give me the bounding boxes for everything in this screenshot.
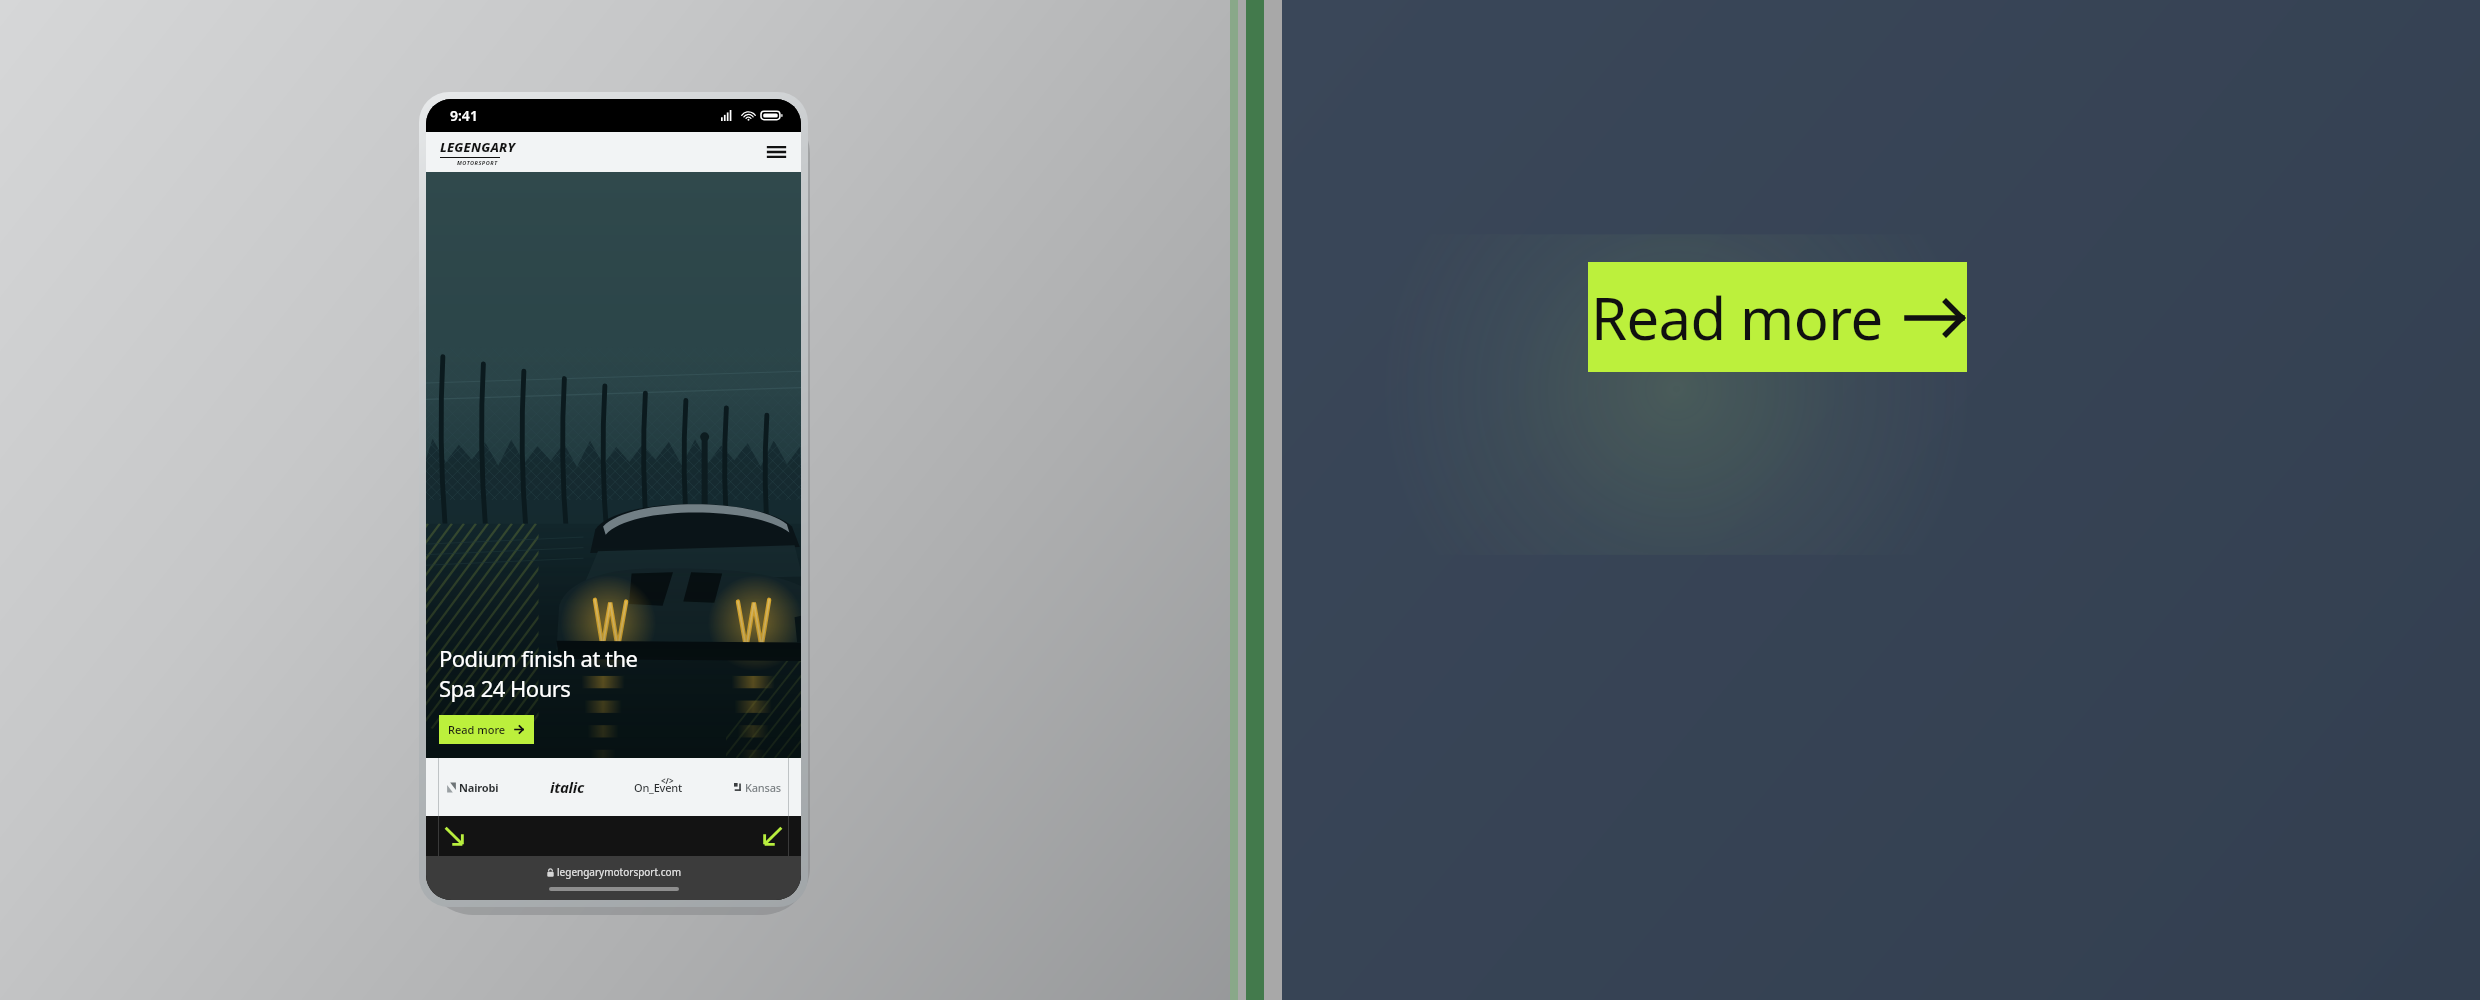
staticText: Nairobi <box>459 780 499 795</box>
staticText: On_Event <box>634 780 683 795</box>
staticText: Podium finish at the <box>439 643 638 673</box>
staticText: Spa 24 Hours <box>439 673 571 703</box>
staticText: Read more <box>1591 278 1883 357</box>
staticText: italic <box>550 777 584 797</box>
staticText: Read more <box>448 722 506 737</box>
button[interactable]: Open menu <box>765 141 787 163</box>
button[interactable]: Read more <box>1588 262 1967 372</box>
staticText: MOTORSPORT <box>457 159 498 166</box>
staticText: LEGENGARY <box>440 138 516 156</box>
staticText: 9:41 <box>450 106 478 125</box>
button[interactable]: Scroll down left <box>762 825 784 847</box>
staticText: legengarymotorsport.com <box>557 865 681 879</box>
staticText: Kansas <box>745 780 781 795</box>
button[interactable]: Read more <box>439 715 534 744</box>
staticText: </> <box>661 775 674 786</box>
button[interactable]: Scroll down <box>443 825 465 847</box>
